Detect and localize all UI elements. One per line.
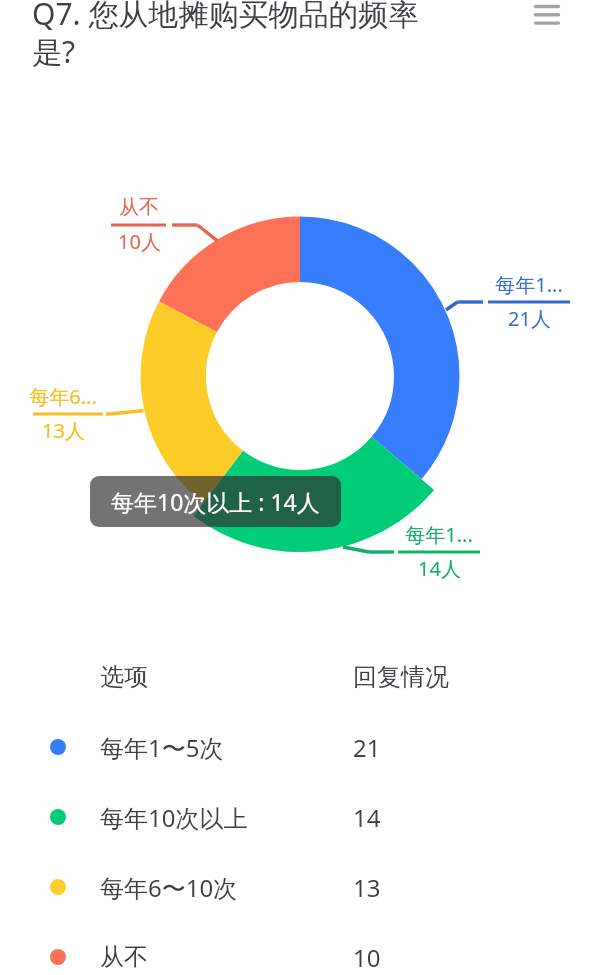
staticText: 每年1... [405, 521, 473, 548]
button[interactable]: 每年1〜5次 [0, 712, 600, 782]
staticText: 14人 [418, 555, 461, 582]
staticText: 每年6... [29, 383, 97, 410]
staticText: 回复情况 [353, 662, 449, 692]
staticText: 选项 [100, 662, 148, 692]
staticText: 10 [353, 941, 381, 974]
staticText: 每年10次以上 : 14人 [111, 486, 320, 517]
staticText: 从不 [119, 195, 159, 220]
button[interactable]: 每年10次以上 [0, 782, 600, 852]
staticText: 21人 [508, 305, 551, 332]
staticText: 每年10次以上 [100, 801, 248, 834]
staticText: 每年1... [495, 271, 563, 298]
staticText: 10人 [118, 228, 161, 255]
staticText: 13 [353, 871, 381, 904]
staticText: 从不 [100, 942, 148, 972]
staticText: 每年6〜10次 [100, 871, 238, 904]
staticText: 14 [353, 801, 381, 834]
button[interactable]: 从不 [0, 922, 600, 975]
staticText: 21 [353, 731, 381, 764]
staticText: Q7. 您从地摊购买物品的频率是? [32, 0, 432, 72]
button[interactable]: 每年6〜10次 [0, 852, 600, 922]
staticText: 13人 [42, 417, 85, 444]
staticText: 每年1〜5次 [100, 731, 224, 764]
button[interactable]: Menu [523, 0, 571, 39]
